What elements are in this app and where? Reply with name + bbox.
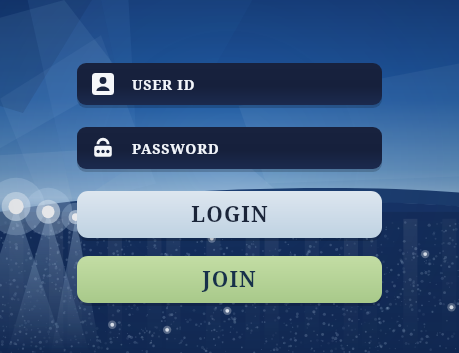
button[interactable]: Password — [77, 127, 382, 169]
staticText: USER ID — [132, 75, 196, 94]
staticText: JOIN — [202, 265, 257, 294]
other: Password — [92, 137, 114, 159]
button[interactable]: JOIN — [77, 256, 382, 303]
button[interactable]: User ID — [77, 63, 382, 105]
other: User ID — [92, 73, 114, 95]
staticText: PASSWORD — [132, 139, 220, 158]
staticText: LOGIN — [191, 200, 269, 229]
button[interactable]: LOGIN — [77, 191, 382, 238]
